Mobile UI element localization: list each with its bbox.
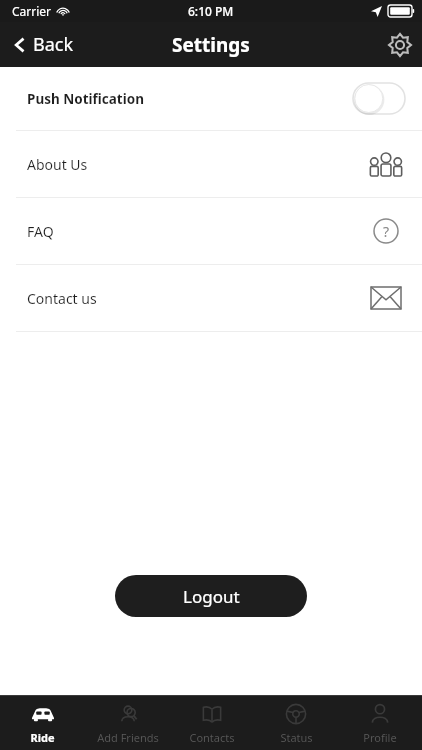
staticText: Add Friends xyxy=(97,730,159,745)
staticText: Logout xyxy=(183,585,240,608)
button[interactable]: About Us xyxy=(0,131,422,197)
staticText: Settings xyxy=(172,32,250,58)
staticText: Push Notification xyxy=(27,90,144,108)
button[interactable]: Push Notification toggle xyxy=(353,83,405,114)
button[interactable]: FAQ xyxy=(0,198,422,264)
button[interactable]: Ride xyxy=(0,696,85,750)
staticText: Carrier xyxy=(12,3,52,19)
button[interactable]: Profile xyxy=(338,696,422,750)
staticText: Profile xyxy=(363,730,397,745)
button[interactable]: Status xyxy=(254,696,338,750)
staticText: Status xyxy=(280,730,313,745)
staticText: FAQ xyxy=(27,222,54,241)
staticText: ? xyxy=(383,222,390,241)
staticText: About Us xyxy=(27,155,88,174)
button[interactable]: FAQ xyxy=(367,212,405,250)
staticText: Ride xyxy=(30,730,55,745)
button[interactable]: Settings xyxy=(377,22,422,67)
button[interactable]: Contacts xyxy=(170,696,254,750)
button[interactable]: Back xyxy=(0,22,84,67)
button[interactable]: Push Notification xyxy=(0,67,422,130)
button[interactable]: Logout xyxy=(115,575,307,617)
button[interactable]: Contact us xyxy=(367,279,405,317)
staticText: 6:10 PM xyxy=(188,3,234,19)
button[interactable]: Add Friends xyxy=(85,696,170,750)
button[interactable]: About Us xyxy=(367,145,405,183)
button[interactable]: Contact us xyxy=(0,265,422,331)
staticText: Contact us xyxy=(27,289,97,308)
staticText: Back xyxy=(33,32,74,57)
staticText: Contacts xyxy=(189,730,235,745)
